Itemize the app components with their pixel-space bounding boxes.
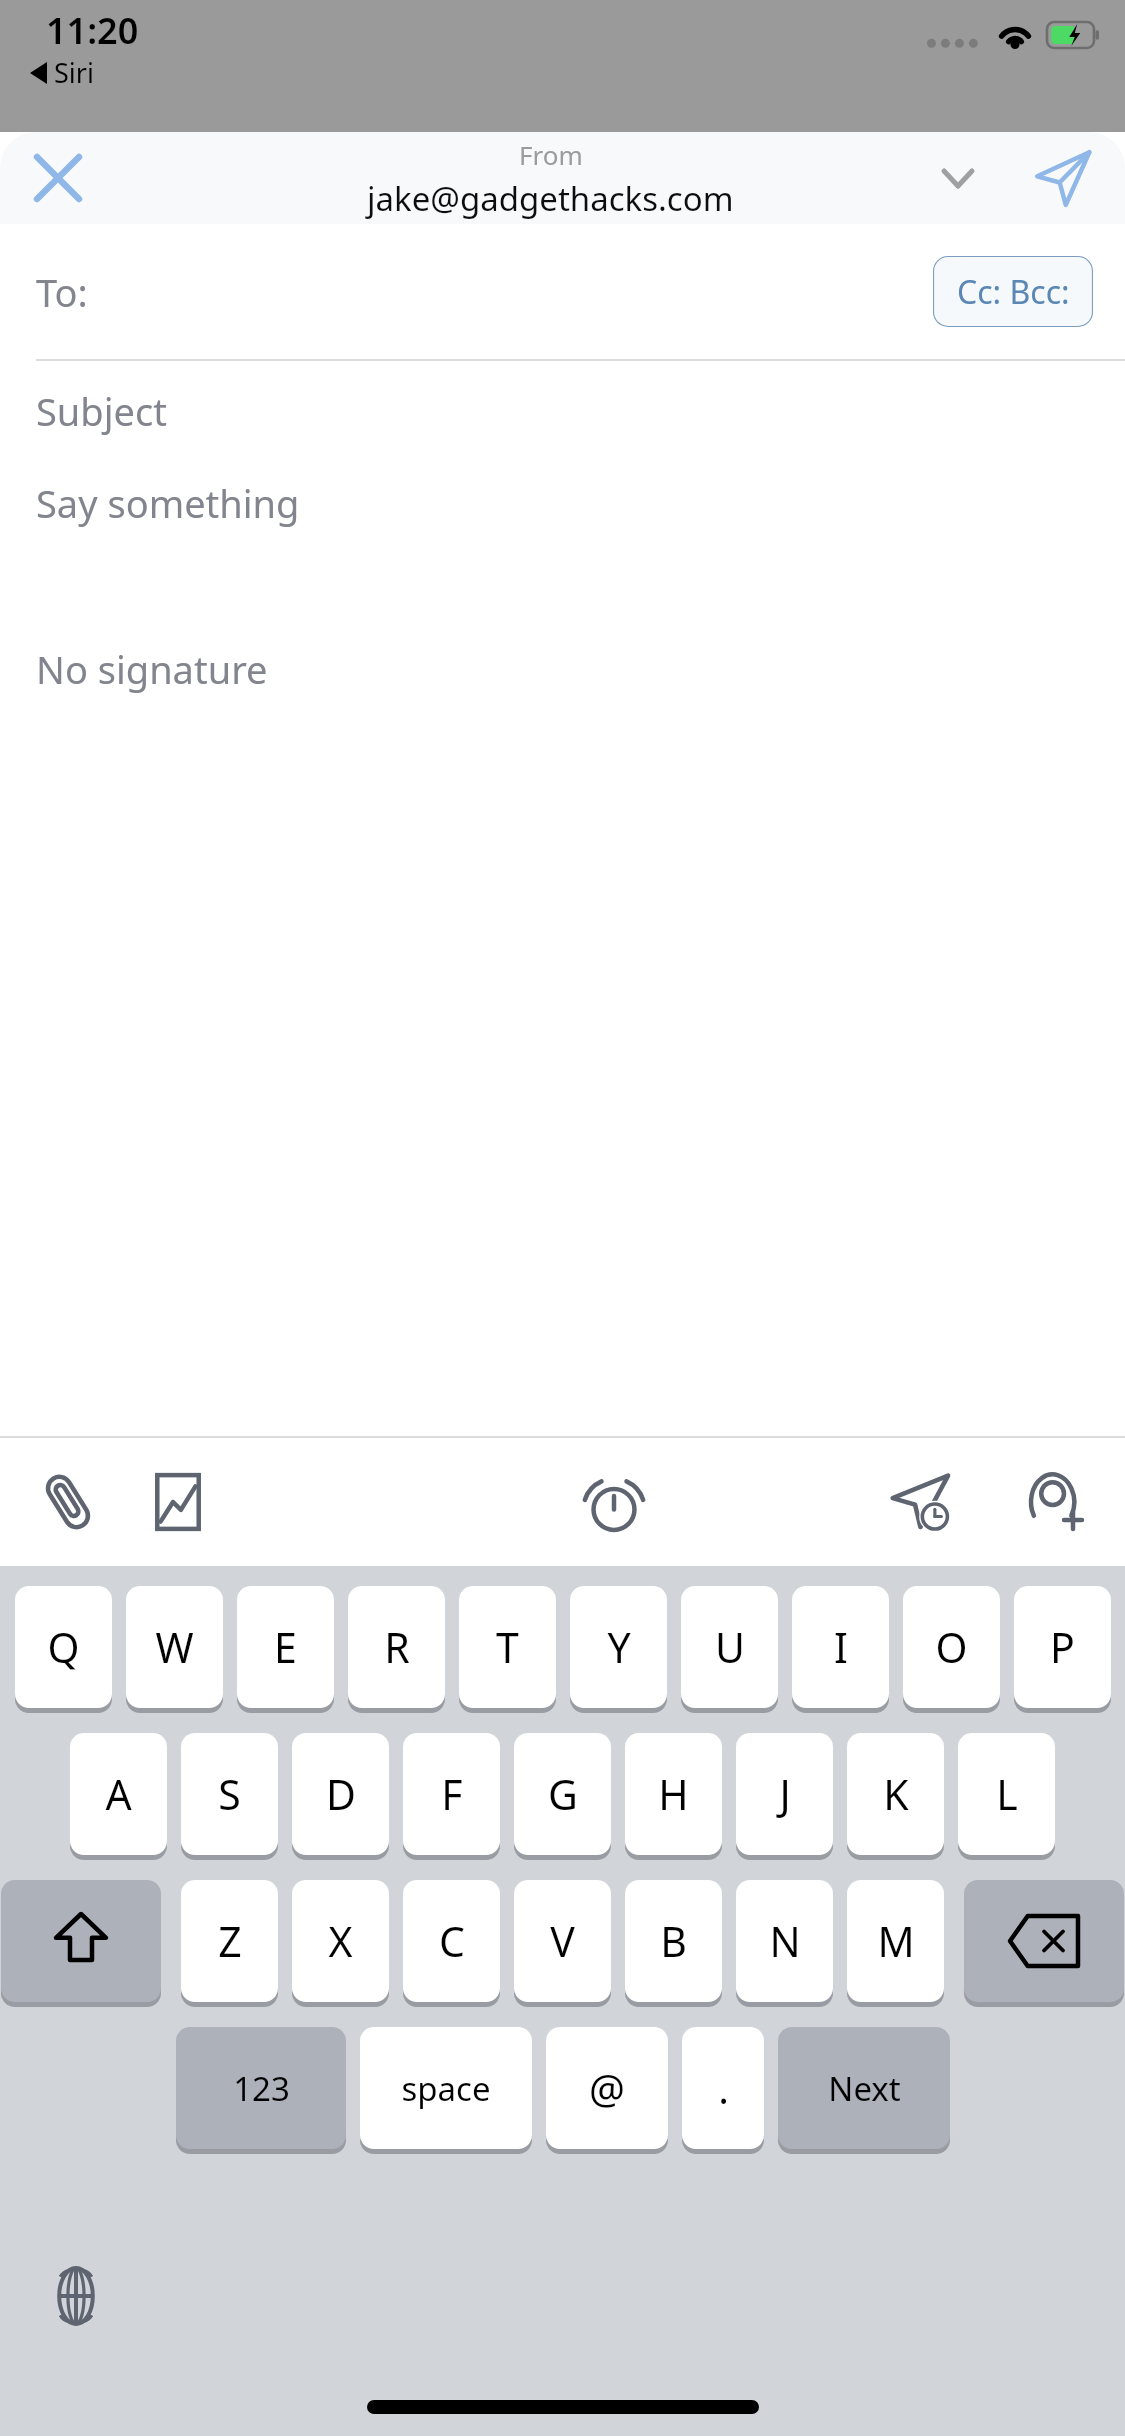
staticText: N	[769, 1913, 801, 1969]
button[interactable]: Q	[15, 1586, 112, 1714]
button[interactable]: Add contact	[1009, 1456, 1101, 1548]
button[interactable]: I	[792, 1586, 889, 1714]
staticText: jake@gadgethacks.com	[367, 176, 734, 221]
staticText: H	[658, 1766, 689, 1822]
button[interactable]: Say something	[0, 461, 1125, 633]
staticText: K	[883, 1766, 909, 1822]
button[interactable]: Y	[570, 1586, 667, 1714]
button[interactable]: W	[126, 1586, 223, 1714]
button[interactable]: Remind me	[568, 1456, 660, 1548]
staticText: Next	[828, 2066, 901, 2111]
button[interactable]: V	[514, 1880, 611, 2008]
button[interactable]: @	[546, 2027, 668, 2155]
staticText: .	[718, 2061, 729, 2115]
staticText: Subject	[36, 385, 167, 437]
button[interactable]: J	[736, 1733, 833, 1861]
button[interactable]: Insert photo	[132, 1456, 224, 1548]
button[interactable]: Z	[181, 1880, 278, 2008]
button[interactable]: .	[682, 2027, 764, 2155]
staticText: J	[779, 1766, 791, 1822]
button[interactable]: L	[958, 1733, 1055, 1861]
button[interactable]: Attach file	[22, 1456, 114, 1548]
staticText: G	[548, 1766, 578, 1822]
staticText: space	[401, 2066, 491, 2111]
button[interactable]: 123	[176, 2027, 346, 2155]
staticText: A	[105, 1766, 132, 1822]
staticText: Say something	[36, 477, 300, 529]
button[interactable]: To:	[0, 224, 1125, 359]
button[interactable]: A	[70, 1733, 167, 1861]
staticText: 11:20	[46, 6, 139, 55]
button[interactable]: B	[625, 1880, 722, 2008]
staticText: 123	[233, 2066, 290, 2111]
button[interactable]: D	[292, 1733, 389, 1861]
button[interactable]: H	[625, 1733, 722, 1861]
staticText: B	[660, 1913, 687, 1969]
staticText: Y	[607, 1619, 631, 1675]
staticText: I	[834, 1619, 848, 1675]
staticText: F	[441, 1766, 463, 1822]
staticText: @	[589, 2061, 625, 2115]
button[interactable]: Send	[1021, 136, 1105, 220]
button[interactable]: Next	[778, 2027, 950, 2155]
button[interactable]: Choose sender account	[925, 145, 991, 211]
staticText: Siri	[54, 54, 94, 91]
button[interactable]: P	[1014, 1586, 1111, 1714]
staticText: To:	[36, 266, 88, 318]
staticText: C	[439, 1913, 465, 1969]
staticText: V	[550, 1913, 575, 1969]
button[interactable]: F	[403, 1733, 500, 1861]
button[interactable]: K	[847, 1733, 944, 1861]
staticText: D	[326, 1766, 356, 1822]
button[interactable]: G	[514, 1733, 611, 1861]
staticText: U	[715, 1619, 745, 1675]
button[interactable]: U	[681, 1586, 778, 1714]
button[interactable]: space	[360, 2027, 532, 2155]
staticText: Q	[47, 1619, 80, 1675]
staticText: From	[519, 137, 583, 172]
button[interactable]: Cancel	[18, 138, 98, 218]
staticText: S	[218, 1766, 241, 1822]
staticText: E	[274, 1619, 297, 1675]
button[interactable]: T	[459, 1586, 556, 1714]
button[interactable]: X	[292, 1880, 389, 2008]
button[interactable]: E	[237, 1586, 334, 1714]
staticText: Cc: Bcc:	[957, 270, 1070, 314]
staticText: O	[935, 1619, 968, 1675]
staticText: R	[384, 1619, 410, 1675]
button[interactable]: R	[348, 1586, 445, 1714]
staticText: No signature	[36, 643, 268, 695]
button[interactable]: Switch keyboard	[40, 2260, 112, 2332]
staticText: T	[496, 1619, 519, 1675]
button[interactable]: S	[181, 1733, 278, 1861]
button[interactable]: O	[903, 1586, 1000, 1714]
button[interactable]: Cc: Bcc:	[933, 256, 1093, 327]
button[interactable]: Back to Siri	[30, 54, 94, 91]
staticText: P	[1050, 1619, 1075, 1675]
button[interactable]: Shift	[1, 1880, 161, 2008]
button[interactable]: Backspace	[964, 1880, 1124, 2008]
button[interactable]: C	[403, 1880, 500, 2008]
staticText: W	[155, 1619, 194, 1675]
button[interactable]: Subject	[0, 361, 1125, 461]
staticText: Z	[218, 1913, 242, 1969]
staticText: X	[328, 1913, 353, 1969]
staticText: L	[996, 1766, 1018, 1822]
button[interactable]: N	[736, 1880, 833, 2008]
staticText: M	[877, 1913, 915, 1969]
button[interactable]: Send later	[877, 1456, 969, 1548]
button[interactable]: M	[847, 1880, 944, 2008]
